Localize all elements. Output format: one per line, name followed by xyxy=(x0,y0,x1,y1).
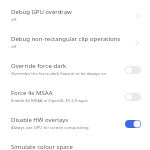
staticText: Always use GPU for screen compositing xyxy=(11,125,89,131)
staticText: Force 4x MSAA xyxy=(11,89,53,97)
staticText: Overrides the force-dark feature to be a… xyxy=(11,71,107,77)
button[interactable]: Simulate colour space xyxy=(0,143,150,150)
button[interactable]: Clip operations options xyxy=(125,35,143,51)
button[interactable]: Override force-dark xyxy=(0,62,150,89)
staticText: Debug non-rectangular clip operations xyxy=(11,35,121,43)
button[interactable]: Disable HW overlays xyxy=(123,116,143,132)
button[interactable]: Debug GPU overdraw options xyxy=(125,8,143,24)
staticText: off xyxy=(11,17,17,23)
button[interactable]: Override force-dark xyxy=(123,62,143,78)
staticText: Override force-dark xyxy=(11,62,67,70)
staticText: Enable 4x MSAA in OpenGL ES 2.0 apps xyxy=(11,98,88,104)
button[interactable]: Force 4x MSAA xyxy=(0,89,150,116)
staticText: Simulate colour space xyxy=(11,143,73,150)
staticText: Debug GPU overdraw xyxy=(11,8,72,16)
button[interactable]: Disable HW overlays xyxy=(0,116,150,143)
button[interactable]: Force 4x MSAA xyxy=(123,89,143,105)
staticText: Disable HW overlays xyxy=(11,116,69,124)
staticText: off xyxy=(11,44,17,50)
button[interactable]: Debug GPU overdraw xyxy=(0,8,150,35)
button[interactable]: Debug non-rectangular clip operations xyxy=(0,35,150,62)
